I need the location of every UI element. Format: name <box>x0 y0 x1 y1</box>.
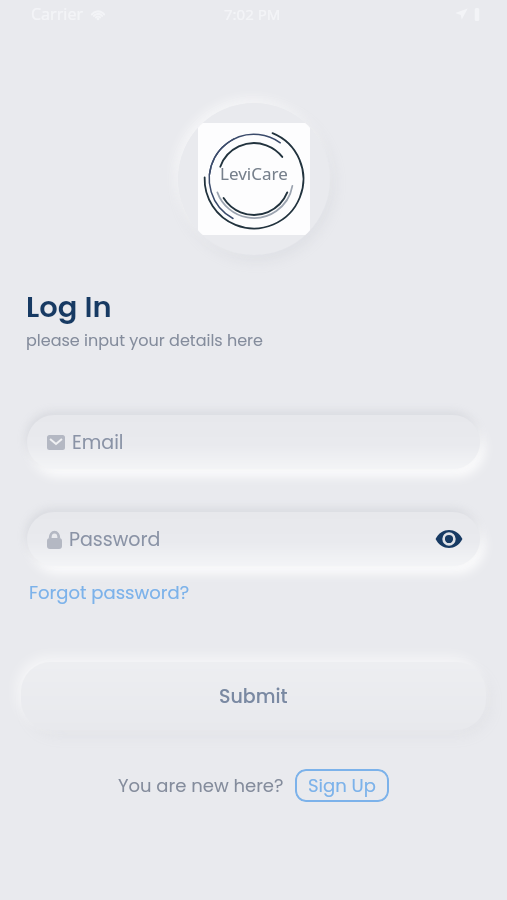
staticText: 7:02 PM <box>224 4 281 24</box>
button[interactable]: Email <box>27 415 480 469</box>
button[interactable]: Password <box>27 512 480 566</box>
staticText: Password <box>69 526 161 553</box>
staticText: You are new here? <box>118 773 284 798</box>
button[interactable]: Sign Up <box>295 769 389 802</box>
staticText: Email <box>72 429 124 456</box>
button[interactable]: Submit <box>21 662 486 730</box>
button[interactable]: Show password <box>434 524 464 554</box>
staticText: Sign Up <box>308 773 376 798</box>
staticText: LeviCare <box>220 162 288 185</box>
staticText: Forgot password? <box>29 580 190 605</box>
staticText: please input your details here <box>26 329 264 351</box>
staticText: Submit <box>219 683 288 710</box>
button[interactable]: Forgot password? <box>29 580 190 605</box>
staticText: Log In <box>26 287 112 328</box>
staticText: Carrier <box>31 3 84 25</box>
